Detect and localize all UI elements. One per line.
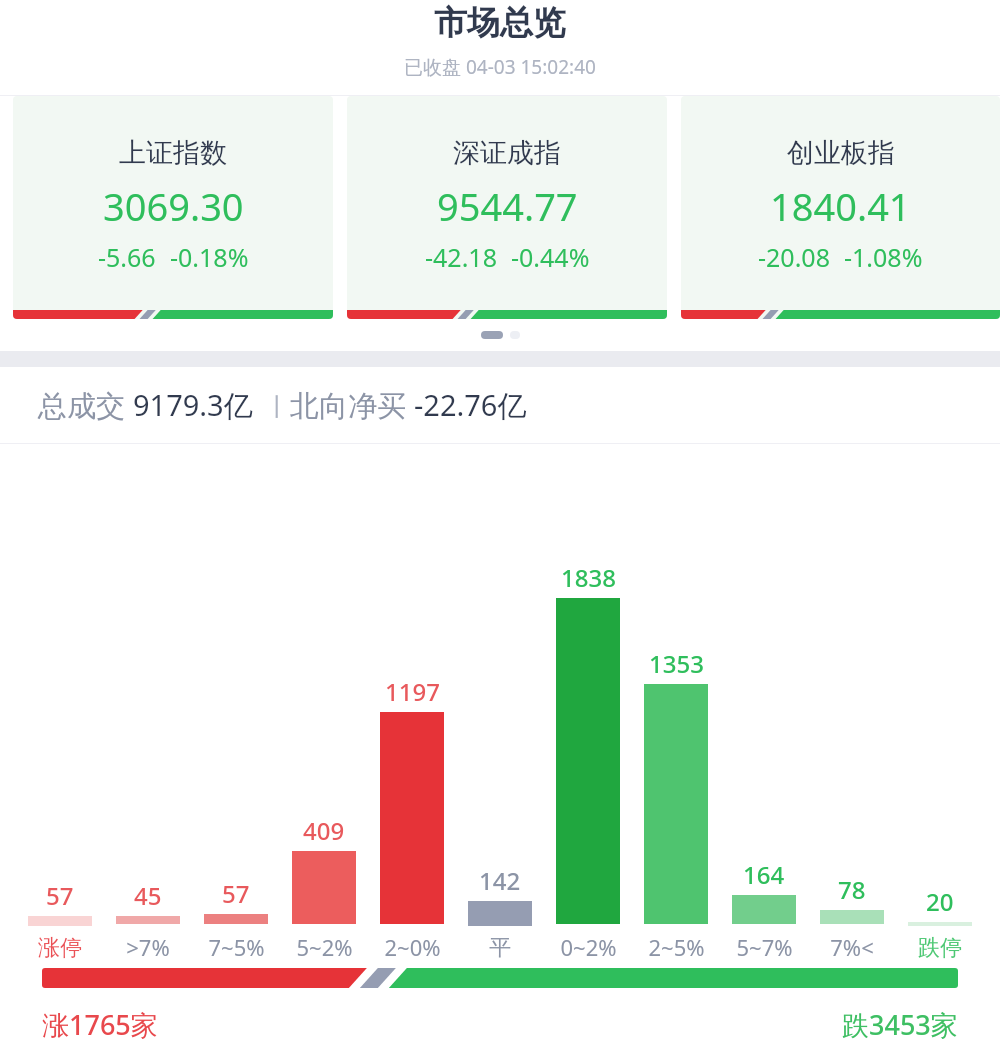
staticText: 市场总览 — [434, 2, 566, 44]
staticText: -0.18% — [170, 240, 249, 274]
button[interactable]: 20 — [908, 885, 972, 962]
button[interactable]: 142 — [468, 864, 532, 962]
staticText: 北向净买 — [290, 385, 414, 425]
staticText: 3069.30 — [103, 180, 244, 232]
staticText: 跌3453家 — [842, 1006, 958, 1043]
staticText: 1840.41 — [770, 180, 911, 232]
button[interactable]: 1838 — [556, 561, 620, 962]
staticText: 深证成指 — [453, 136, 561, 170]
staticText: -20.08 — [758, 240, 830, 274]
staticText: 平 — [489, 934, 511, 962]
staticText: 上证指数 — [119, 136, 227, 170]
staticText: 丨 — [253, 389, 290, 422]
button[interactable]: 1197 — [380, 675, 444, 962]
staticText: 总成交 — [38, 385, 133, 425]
button[interactable]: 409 — [292, 814, 356, 962]
button[interactable]: 45 — [116, 879, 180, 962]
staticText: >7% — [126, 932, 170, 962]
staticText: 跌停 — [918, 934, 962, 962]
button[interactable]: 上证指数 — [13, 96, 333, 319]
button[interactable]: 57 — [204, 877, 268, 962]
staticText: 2~0% — [384, 932, 441, 962]
staticText: 1197 — [385, 675, 440, 708]
staticText: 57 — [46, 879, 74, 912]
staticText: 创业板指 — [787, 136, 895, 170]
staticText: 57 — [222, 877, 250, 910]
button[interactable]: 总成交 — [0, 367, 1000, 443]
staticText: 5~2% — [296, 932, 353, 962]
staticText: -0.44% — [511, 240, 590, 274]
staticText: 2~5% — [648, 932, 705, 962]
staticText: 9179.3亿 — [133, 385, 253, 425]
staticText: 45 — [134, 879, 162, 912]
button[interactable]: 深证成指 — [347, 96, 667, 319]
staticText: 涨停 — [38, 934, 82, 962]
staticText: 涨1765家 — [42, 1006, 158, 1043]
staticText: 7~5% — [208, 932, 265, 962]
staticText: 409 — [303, 814, 345, 847]
staticText: 142 — [479, 864, 521, 897]
button[interactable]: 164 — [732, 858, 796, 962]
staticText: -5.66 — [98, 240, 156, 274]
staticText: 1838 — [561, 561, 616, 594]
staticText: 20 — [926, 885, 954, 918]
staticText: 0~2% — [560, 932, 617, 962]
staticText: -1.08% — [844, 240, 923, 274]
staticText: -22.76亿 — [414, 385, 527, 425]
staticText: 164 — [743, 858, 785, 891]
staticText: 7%< — [830, 932, 874, 962]
button[interactable]: 1353 — [644, 647, 708, 962]
button[interactable]: 创业板指 — [681, 96, 1000, 319]
button[interactable]: 57 — [28, 879, 92, 962]
staticText: 5~7% — [736, 932, 793, 962]
staticText: 78 — [838, 873, 866, 906]
staticText: 1353 — [649, 647, 704, 680]
staticText: 已收盘 04-03 15:02:40 — [404, 54, 596, 80]
staticText: -42.18 — [425, 240, 497, 274]
staticText: 9544.77 — [437, 180, 578, 232]
button[interactable]: 78 — [820, 873, 884, 962]
